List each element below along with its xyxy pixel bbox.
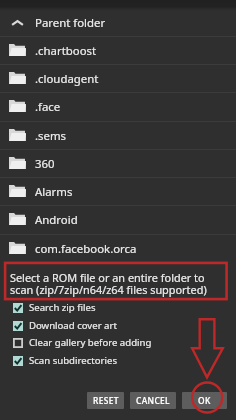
staticText: Scan subdirectories: [29, 354, 117, 367]
button[interactable]: .face: [0, 93, 236, 120]
staticText: Parent folder: [35, 15, 106, 31]
button[interactable]: Search zip files: [13, 300, 213, 316]
staticText: .chartboost: [35, 43, 97, 59]
staticText: .sems: [35, 128, 67, 144]
button[interactable]: Android: [0, 206, 236, 233]
button[interactable]: Clear gallery before adding: [13, 335, 213, 351]
button[interactable]: RESET: [87, 392, 124, 409]
button[interactable]: .cloudagent: [0, 65, 236, 92]
staticText: Android: [35, 212, 78, 228]
staticText: .cloudagent: [35, 71, 99, 87]
staticText: .face: [35, 99, 61, 115]
staticText: CANCEL: [136, 395, 170, 406]
staticText: Select a ROM file or an entire folder to…: [10, 270, 207, 297]
button[interactable]: 360: [0, 150, 236, 177]
staticText: Search zip files: [29, 301, 96, 314]
button[interactable]: OK: [182, 392, 227, 409]
button[interactable]: .sems: [0, 122, 236, 149]
staticText: com.facebook.orca: [35, 241, 137, 257]
button[interactable]: Download cover art: [13, 318, 213, 334]
staticText: Alarms: [35, 184, 73, 200]
button[interactable]: CANCEL: [130, 392, 176, 409]
button[interactable]: Alarms: [0, 178, 236, 205]
staticText: OK: [198, 395, 211, 406]
staticText: Download cover art: [29, 319, 117, 332]
staticText: RESET: [93, 395, 119, 406]
button[interactable]: .chartboost: [0, 37, 236, 64]
button[interactable]: Scan subdirectories: [13, 353, 213, 369]
staticText: Clear gallery before adding: [29, 336, 152, 349]
button[interactable]: Parent folder: [0, 9, 236, 36]
staticText: 360: [35, 156, 55, 172]
button[interactable]: com.facebook.orca: [0, 235, 236, 262]
